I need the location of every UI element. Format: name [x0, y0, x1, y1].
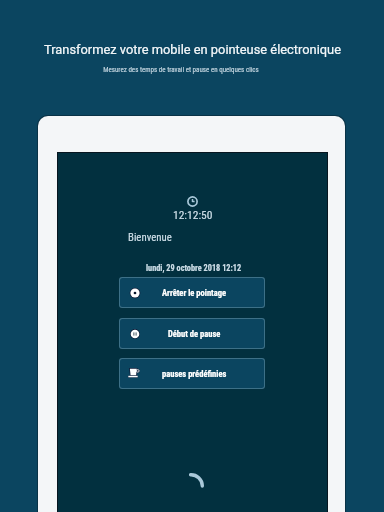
staticText: 12:12:50 [173, 208, 213, 221]
button[interactable]: Break [120, 359, 264, 388]
staticText: Arrêter le pointage [162, 288, 227, 298]
button[interactable]: Pause [120, 319, 264, 348]
staticText: Mesurez des temps de travail et pause en… [103, 66, 259, 74]
other: Break [129, 367, 143, 381]
other: Pause [129, 328, 141, 340]
button[interactable]: Stop [120, 278, 264, 307]
other: Stop [129, 287, 141, 299]
staticText: Début de pause [168, 329, 221, 339]
staticText: pauses prédéfinies [162, 369, 227, 379]
staticText: Transformez votre mobile en pointeuse él… [44, 42, 341, 57]
staticText: lundi, 29 octobre 2018 12:12 [146, 263, 242, 273]
staticText: Bienvenue [128, 231, 172, 244]
